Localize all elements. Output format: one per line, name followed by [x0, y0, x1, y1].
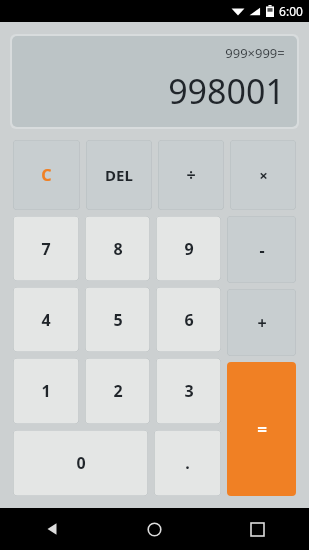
- button[interactable]: C: [13, 140, 80, 210]
- button[interactable]: 1: [13, 358, 79, 424]
- button[interactable]: DEL: [86, 140, 152, 210]
- button[interactable]: .: [154, 430, 221, 496]
- button[interactable]: 8: [85, 216, 150, 281]
- staticText: 4: [41, 309, 51, 331]
- button[interactable]: 9: [156, 216, 221, 281]
- staticText: 3: [184, 380, 194, 402]
- staticText: +: [257, 312, 267, 334]
- staticText: 7: [41, 238, 51, 260]
- staticText: .: [185, 452, 190, 474]
- staticText: 999×999=: [225, 44, 285, 62]
- button[interactable]: 7: [13, 216, 79, 281]
- button[interactable]: 999×999=: [12, 36, 297, 127]
- staticText: 5: [113, 309, 123, 331]
- button[interactable]: +: [227, 289, 296, 356]
- button[interactable]: 0: [13, 430, 148, 496]
- staticText: C: [41, 164, 52, 186]
- staticText: 1: [41, 380, 51, 402]
- staticText: 9: [184, 238, 194, 260]
- staticText: =: [257, 418, 267, 441]
- button[interactable]: 2: [85, 358, 150, 424]
- button[interactable]: Recent apps: [206, 508, 309, 550]
- staticText: 6:00: [279, 3, 303, 19]
- staticText: 998001: [168, 68, 285, 114]
- staticText: 8: [113, 238, 123, 260]
- button[interactable]: Home: [103, 508, 206, 550]
- button[interactable]: ÷: [158, 140, 224, 210]
- staticText: -: [259, 239, 265, 261]
- button[interactable]: ×: [230, 140, 296, 210]
- staticText: ×: [259, 165, 268, 185]
- staticText: DEL: [105, 165, 133, 185]
- staticText: ÷: [186, 164, 196, 186]
- button[interactable]: 6: [156, 287, 221, 352]
- button[interactable]: =: [227, 362, 296, 496]
- button[interactable]: -: [227, 216, 296, 283]
- button[interactable]: 4: [13, 287, 79, 352]
- staticText: 6: [184, 309, 194, 331]
- button[interactable]: 5: [85, 287, 150, 352]
- button[interactable]: Back: [0, 508, 103, 550]
- staticText: 2: [113, 380, 123, 402]
- staticText: 0: [76, 452, 86, 474]
- button[interactable]: 3: [156, 358, 221, 424]
